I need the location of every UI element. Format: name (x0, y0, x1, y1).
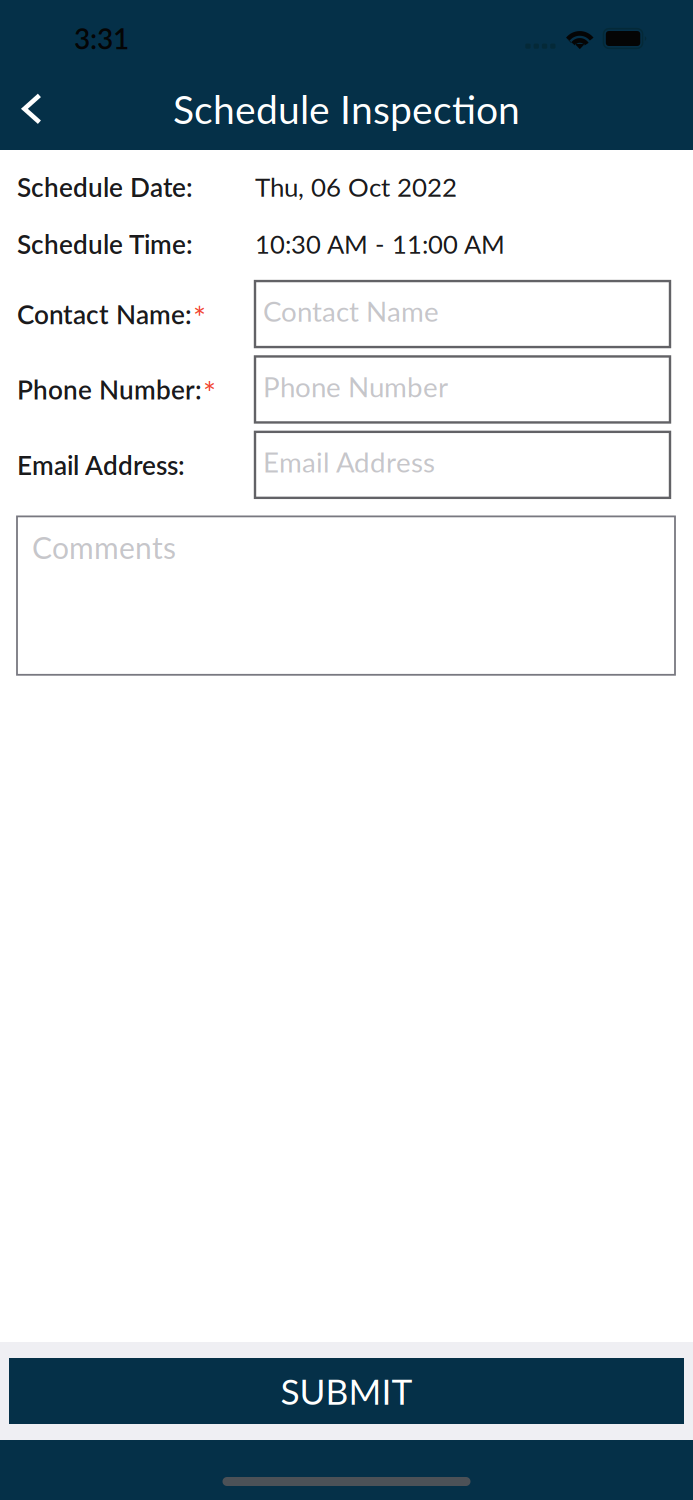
staticText: SUBMIT (280, 1370, 412, 1412)
button[interactable]: Phone Number (255, 356, 670, 422)
button[interactable]: SUBMIT (9, 1358, 684, 1424)
staticText: Phone Number (263, 370, 448, 403)
staticText: Thu, 06 Oct 2022 (255, 171, 457, 202)
staticText: Contact Name: (17, 298, 192, 330)
staticText: * (203, 374, 216, 411)
staticText: Email Address: (17, 449, 185, 481)
staticText: Phone Number: (17, 374, 202, 405)
staticText: 10:30 AM - 11:00 AM (255, 229, 505, 259)
button[interactable]: Contact Name (255, 281, 670, 347)
staticText: Schedule Inspection (173, 86, 520, 132)
button[interactable]: Back (0, 68, 64, 150)
staticText: Comments (32, 529, 176, 565)
staticText: Schedule Time: (17, 228, 193, 260)
staticText: * (193, 298, 206, 335)
staticText: Contact Name (263, 294, 439, 328)
button[interactable]: Comments (17, 516, 675, 675)
staticText: 3:31 (74, 22, 129, 55)
button[interactable]: Email Address (255, 432, 670, 498)
staticText: Email Address (263, 445, 435, 478)
staticText: Schedule Date: (17, 171, 193, 203)
